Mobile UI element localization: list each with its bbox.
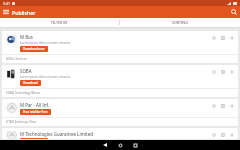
button[interactable]: Share xyxy=(219,68,226,75)
button[interactable]: Favourite xyxy=(210,102,217,109)
staticText: Download xyxy=(23,81,38,85)
staticText: M Par - All Inf. xyxy=(20,102,50,108)
button[interactable]: FILTER BY xyxy=(0,18,119,27)
staticText: Download now xyxy=(23,47,45,51)
button[interactable]: M Bus xyxy=(2,31,238,63)
button[interactable]: Home xyxy=(115,140,125,150)
staticText: SOBA xyxy=(20,68,32,74)
staticText: SORTING xyxy=(172,20,188,25)
staticText: M Bus xyxy=(20,34,33,40)
button[interactable]: Download now xyxy=(20,46,48,52)
staticText: UTAN Exchange Ultra xyxy=(6,120,36,124)
button[interactable]: Download xyxy=(20,80,41,86)
button[interactable]: Favourite xyxy=(210,131,217,138)
staticText: M Technologies Guarantee Limited xyxy=(20,131,93,137)
button[interactable]: Share xyxy=(219,34,226,41)
button[interactable]: SOBA xyxy=(2,65,238,97)
button[interactable]: Download now xyxy=(20,138,48,139)
button[interactable]: Back xyxy=(100,140,110,150)
button[interactable]: More options xyxy=(228,131,235,138)
button[interactable]: Favourite xyxy=(210,68,217,75)
staticText: Publisher xyxy=(12,9,36,16)
staticText: Lorem ipsum dolor sit amet consecte xyxy=(20,41,71,45)
button[interactable]: Open navigation menu xyxy=(0,6,12,18)
staticText: Free trial for Free xyxy=(23,110,48,114)
staticText: 9:41 xyxy=(3,1,10,6)
button[interactable]: M Par - All Inf. xyxy=(2,99,238,126)
staticText: FILTER BY xyxy=(51,20,68,25)
button[interactable]: Favourite xyxy=(210,34,217,41)
button[interactable]: Free trial for Free xyxy=(20,109,51,115)
staticText: SOBA Technology Mover xyxy=(6,91,41,95)
button[interactable]: Share xyxy=(219,131,226,138)
button[interactable]: More options xyxy=(228,102,235,109)
button[interactable]: SORTING xyxy=(120,18,240,27)
button[interactable]: Search xyxy=(228,6,240,18)
staticText: Lorem ipsum dolor sit amet consecte xyxy=(20,75,71,79)
button[interactable]: Recent apps xyxy=(130,140,140,150)
button[interactable]: More options xyxy=(228,68,235,75)
button[interactable]: More options xyxy=(228,34,235,41)
staticText: M Bus Services xyxy=(6,57,27,61)
button[interactable]: M Technologies Guarantee Limited xyxy=(2,128,238,139)
button[interactable]: Share xyxy=(219,102,226,109)
